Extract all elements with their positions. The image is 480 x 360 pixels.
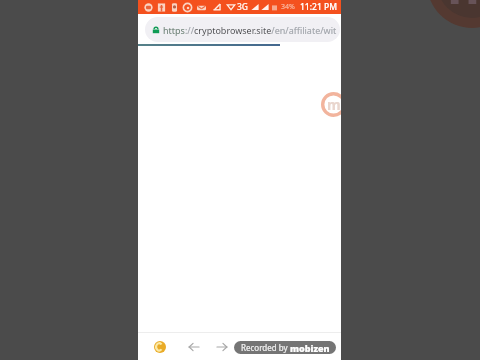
staticText: https://cryptobrowser.site/en/affiliate/… [163,24,337,36]
staticText: 3G [237,1,249,13]
button[interactable]: https://cryptobrowser.site/en/affiliate/… [145,17,340,42]
button[interactable]: Rewards [154,341,166,353]
staticText: mobizen [290,342,330,354]
staticText: Recorded by [241,342,290,353]
staticText: 11:21 PM [300,1,337,13]
staticText: m [447,0,480,19]
button[interactable]: Back [188,341,200,353]
button[interactable]: Forward [216,341,228,353]
staticText: 34% [281,2,295,12]
staticText: m [327,95,341,114]
